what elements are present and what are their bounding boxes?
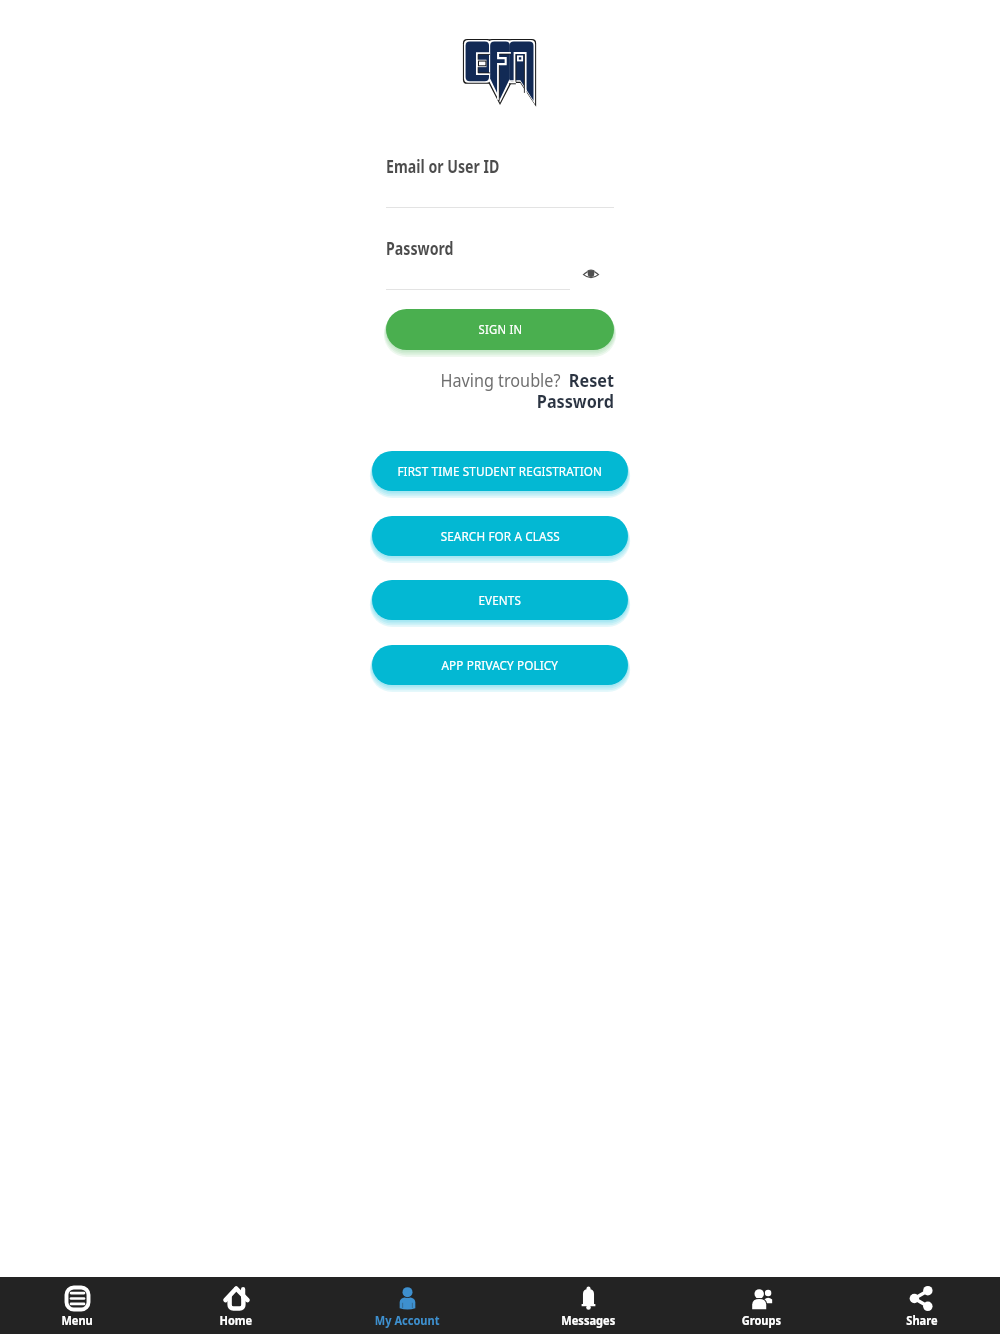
button[interactable]: SEARCH FOR A CLASS <box>372 516 628 556</box>
button[interactable]: APP PRIVACY POLICY <box>372 645 628 685</box>
staticText: My Account <box>375 1312 440 1328</box>
button[interactable]: Home <box>155 1277 317 1334</box>
staticText: Messages <box>561 1312 616 1328</box>
button[interactable]: My Account <box>317 1277 497 1334</box>
button[interactable]: EVENTS <box>372 580 628 620</box>
button[interactable]: SIGN IN <box>386 309 614 350</box>
staticText: Menu <box>61 1312 94 1328</box>
staticText: Password <box>386 236 454 260</box>
staticText: APP PRIVACY POLICY <box>441 656 558 674</box>
button[interactable]: FIRST TIME STUDENT REGISTRATION <box>372 451 628 491</box>
staticText: FIRST TIME STUDENT REGISTRATION <box>397 462 603 480</box>
button[interactable]: Messages <box>497 1277 680 1334</box>
button[interactable]: Show password <box>577 259 605 287</box>
staticText: Share <box>906 1312 938 1328</box>
staticText: Home <box>219 1312 252 1328</box>
staticText: Email or User ID <box>386 154 500 178</box>
button[interactable]: Menu <box>0 1277 155 1334</box>
button[interactable]: Share <box>843 1277 1000 1334</box>
staticText: SEARCH FOR A CLASS <box>441 527 560 545</box>
staticText: Groups <box>742 1312 781 1328</box>
staticText: EVENTS <box>478 591 522 609</box>
button[interactable]: Having trouble? Reset Password <box>386 368 614 414</box>
staticText: SIGN IN <box>478 321 523 338</box>
button[interactable]: Groups <box>680 1277 843 1334</box>
